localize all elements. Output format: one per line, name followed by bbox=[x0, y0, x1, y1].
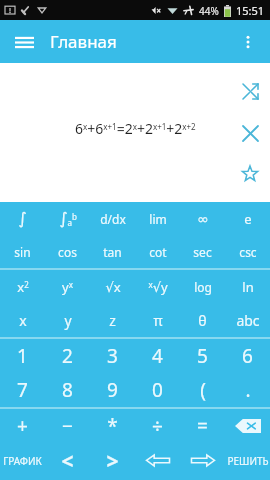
staticText: 7 bbox=[17, 377, 28, 403]
staticText: θ bbox=[198, 311, 207, 330]
button[interactable]: tan bbox=[90, 235, 135, 268]
button[interactable]: cos bbox=[45, 235, 90, 268]
button[interactable]: 2 bbox=[45, 339, 90, 373]
staticText: e bbox=[244, 210, 252, 228]
button[interactable]: ∞ bbox=[180, 202, 225, 235]
button[interactable]: РЕШИТЬ bbox=[225, 443, 270, 479]
button[interactable]: abc bbox=[225, 303, 270, 337]
button[interactable]: x2 bbox=[0, 270, 45, 303]
staticText: = bbox=[197, 413, 208, 439]
button[interactable]: sin bbox=[0, 235, 45, 268]
button[interactable]: 4 bbox=[135, 339, 180, 373]
button[interactable]: 0 bbox=[135, 373, 180, 407]
button[interactable]: 5 bbox=[180, 339, 225, 373]
staticText: yx bbox=[62, 278, 73, 296]
button[interactable]: θ bbox=[180, 303, 225, 337]
button[interactable]: Move cursor right bbox=[180, 443, 225, 479]
button[interactable]: π bbox=[135, 303, 180, 337]
staticText: 8 bbox=[62, 377, 73, 403]
button[interactable]: . bbox=[225, 373, 270, 407]
staticText: < bbox=[61, 447, 74, 476]
staticText: x2 bbox=[17, 278, 29, 296]
button[interactable]: cot bbox=[135, 235, 180, 268]
staticText: 2 bbox=[62, 343, 73, 369]
button[interactable]: More options bbox=[232, 26, 264, 58]
staticText: y bbox=[64, 311, 72, 330]
button[interactable]: ∫ab bbox=[45, 202, 90, 235]
staticText: 5 bbox=[197, 343, 208, 369]
staticText: ∫ bbox=[18, 209, 27, 228]
button[interactable]: ÷ bbox=[135, 409, 180, 443]
staticText: ÷ bbox=[152, 413, 163, 439]
button[interactable]: ( bbox=[180, 373, 225, 407]
staticText: Главная bbox=[50, 30, 117, 53]
staticText: + bbox=[17, 413, 28, 439]
staticText: log bbox=[194, 279, 212, 295]
staticText: ( bbox=[200, 377, 206, 403]
button[interactable]: 1 bbox=[0, 339, 45, 373]
button[interactable]: 8 bbox=[45, 373, 90, 407]
button[interactable]: x bbox=[0, 303, 45, 337]
staticText: − bbox=[62, 413, 73, 439]
staticText: x√y bbox=[148, 278, 168, 296]
staticText: 6 bbox=[242, 343, 253, 369]
staticText: 1 bbox=[17, 343, 28, 369]
button[interactable]: x√y bbox=[135, 270, 180, 303]
staticText: 15:51 bbox=[236, 3, 265, 18]
staticText: π bbox=[153, 311, 163, 330]
staticText: cot bbox=[149, 244, 167, 260]
staticText: 44% bbox=[199, 4, 219, 18]
button[interactable]: > bbox=[90, 443, 135, 479]
button[interactable]: 7 bbox=[0, 373, 45, 407]
staticText: csc bbox=[239, 244, 257, 260]
button[interactable]: Clear bbox=[236, 119, 264, 147]
staticText: x bbox=[19, 311, 27, 330]
button[interactable]: * bbox=[90, 409, 135, 443]
button[interactable]: √x bbox=[90, 270, 135, 303]
button[interactable]: y bbox=[45, 303, 90, 337]
button[interactable]: Shuffle bbox=[236, 77, 264, 105]
button[interactable]: Open navigation drawer bbox=[8, 26, 40, 58]
staticText: . bbox=[245, 377, 251, 403]
staticText: * bbox=[107, 413, 118, 439]
button[interactable]: lim bbox=[135, 202, 180, 235]
staticText: ∞ bbox=[197, 211, 209, 227]
button[interactable]: yx bbox=[45, 270, 90, 303]
staticText: sec bbox=[193, 244, 212, 260]
staticText: z bbox=[109, 311, 116, 330]
staticText: sin bbox=[14, 244, 31, 260]
staticText: 6x+6x+1=2x+2x+1+2x+2 bbox=[75, 119, 196, 138]
button[interactable]: d/dx bbox=[90, 202, 135, 235]
staticText: d/dx bbox=[100, 211, 126, 227]
button[interactable]: log bbox=[180, 270, 225, 303]
staticText: > bbox=[106, 447, 119, 476]
button[interactable]: = bbox=[180, 409, 225, 443]
staticText: 0 bbox=[152, 377, 163, 403]
button[interactable]: csc bbox=[225, 235, 270, 268]
staticText: 3 bbox=[107, 343, 118, 369]
staticText: ln bbox=[242, 278, 254, 296]
button[interactable]: 3 bbox=[90, 339, 135, 373]
button[interactable]: ln bbox=[225, 270, 270, 303]
button[interactable]: < bbox=[45, 443, 90, 479]
staticText: lim bbox=[149, 211, 167, 227]
staticText: ∫ab bbox=[59, 209, 77, 229]
staticText: 4 bbox=[152, 343, 163, 369]
button[interactable]: sec bbox=[180, 235, 225, 268]
button[interactable]: + bbox=[0, 409, 45, 443]
button[interactable]: ∫ bbox=[0, 202, 45, 235]
button[interactable]: Backspace bbox=[225, 409, 270, 443]
staticText: ГРАФИК bbox=[3, 454, 42, 468]
staticText: √x bbox=[105, 278, 121, 296]
button[interactable]: 6 bbox=[225, 339, 270, 373]
button[interactable]: e bbox=[225, 202, 270, 235]
staticText: 9 bbox=[107, 377, 118, 403]
staticText: cos bbox=[58, 244, 77, 260]
button[interactable]: z bbox=[90, 303, 135, 337]
button[interactable]: ГРАФИК bbox=[0, 443, 45, 479]
button[interactable]: 9 bbox=[90, 373, 135, 407]
button[interactable]: − bbox=[45, 409, 90, 443]
staticText: tan bbox=[103, 244, 122, 260]
button[interactable]: Favorite bbox=[236, 160, 264, 188]
button[interactable]: Move cursor left bbox=[135, 443, 180, 479]
